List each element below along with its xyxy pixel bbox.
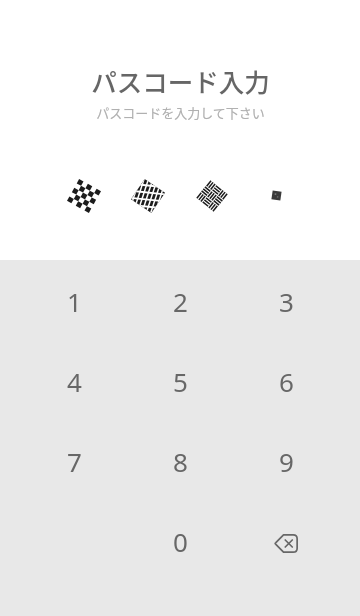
staticText: パスコード入力 <box>91 62 270 99</box>
staticText: 7 <box>67 444 82 479</box>
button[interactable]: 2 <box>127 261 233 341</box>
button[interactable]: Backspace <box>233 501 339 581</box>
staticText: 3 <box>279 284 294 319</box>
staticText: 5 <box>173 364 188 399</box>
staticText: 4 <box>67 364 82 399</box>
button[interactable]: 8 <box>127 421 233 501</box>
button[interactable]: 7 <box>21 421 127 501</box>
staticText: 1 <box>67 284 82 319</box>
button[interactable]: 4 <box>21 341 127 421</box>
button[interactable]: 5 <box>127 341 233 421</box>
staticText: パスコードを入力して下さい <box>96 103 265 122</box>
staticText: 2 <box>173 284 188 319</box>
staticText: 0 <box>173 524 188 559</box>
staticText: 9 <box>279 444 294 479</box>
button[interactable]: 1 <box>21 261 127 341</box>
staticText: 6 <box>279 364 294 399</box>
button[interactable]: 0 <box>127 501 233 581</box>
staticText: 8 <box>173 444 188 479</box>
button[interactable]: 6 <box>233 341 339 421</box>
button[interactable]: 9 <box>233 421 339 501</box>
button[interactable]: 3 <box>233 261 339 341</box>
